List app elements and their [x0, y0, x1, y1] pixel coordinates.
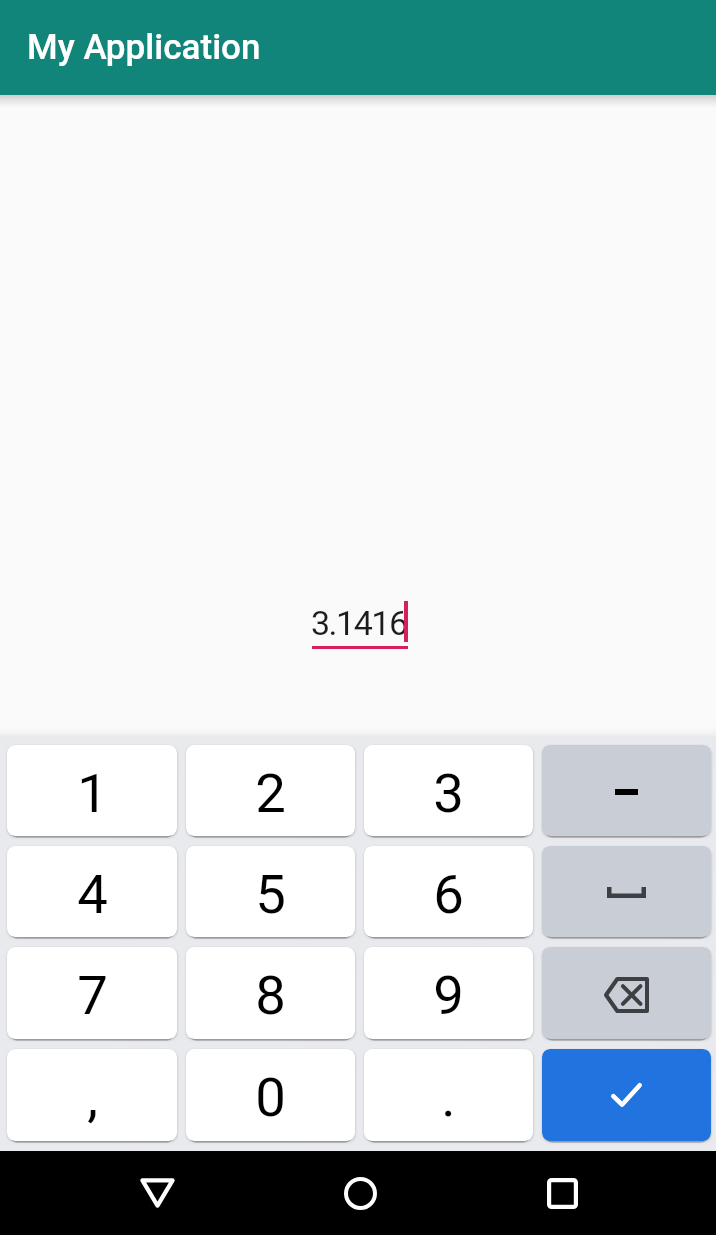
button[interactable]: 9: [364, 947, 533, 1039]
staticText: 6: [433, 862, 464, 926]
button[interactable]: 5: [186, 846, 355, 937]
button[interactable]: 8: [186, 947, 355, 1039]
button[interactable]: 6: [364, 846, 533, 937]
button[interactable]: Home: [322, 1155, 398, 1231]
staticText: 3.1416: [311, 603, 407, 643]
staticText: .: [441, 1065, 456, 1129]
staticText: My Application: [27, 27, 261, 68]
button[interactable]: Recent apps: [524, 1155, 600, 1231]
button[interactable]: 1: [7, 745, 177, 836]
staticText: 7: [77, 963, 108, 1027]
staticText: 3: [433, 761, 464, 825]
button[interactable]: 3: [364, 745, 533, 836]
button[interactable]: 7: [7, 947, 177, 1039]
button[interactable]: Enter: [542, 1049, 711, 1141]
button[interactable]: .: [364, 1049, 533, 1141]
button[interactable]: 2: [186, 745, 355, 836]
staticText: 9: [433, 963, 464, 1027]
button[interactable]: Minus: [542, 745, 711, 836]
button[interactable]: ,: [7, 1049, 177, 1141]
button[interactable]: Space: [542, 846, 711, 937]
staticText: 8: [255, 963, 286, 1027]
staticText: 2: [255, 761, 286, 825]
button[interactable]: Hide keyboard: [119, 1155, 195, 1231]
staticText: 0: [255, 1065, 286, 1129]
button[interactable]: 0: [186, 1049, 355, 1141]
staticText: ,: [87, 1065, 98, 1129]
staticText: 4: [77, 862, 108, 926]
button[interactable]: 3.1416: [311, 592, 409, 649]
button[interactable]: 4: [7, 846, 177, 937]
staticText: 5: [255, 862, 286, 926]
button[interactable]: Backspace: [542, 947, 711, 1039]
staticText: 1: [77, 761, 108, 825]
